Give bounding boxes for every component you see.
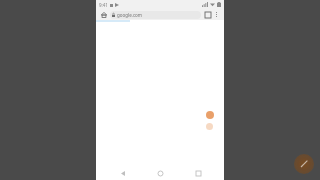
button[interactable]: Home — [99, 10, 108, 19]
button[interactable]: Home — [149, 166, 171, 180]
button[interactable]: Tabs — [203, 10, 212, 19]
staticText: google.com — [117, 12, 142, 18]
button[interactable]: google.com — [110, 11, 201, 19]
button[interactable]: Back — [112, 166, 134, 180]
staticText: 9:41 — [99, 2, 108, 8]
button[interactable]: More options — [212, 10, 221, 19]
button[interactable]: Screen recorder — [294, 154, 314, 174]
button[interactable]: Recent apps — [187, 166, 209, 180]
